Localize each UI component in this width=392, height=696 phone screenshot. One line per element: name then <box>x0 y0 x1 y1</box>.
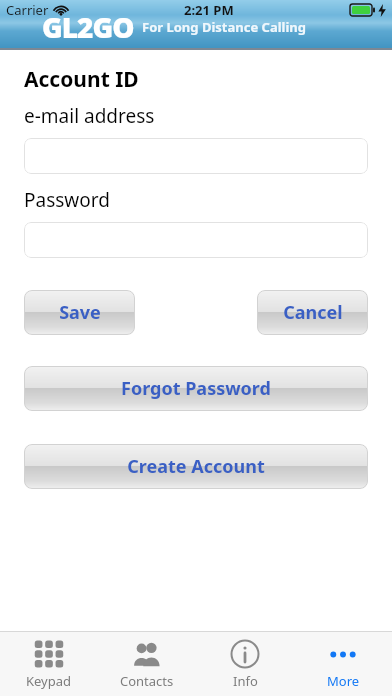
staticText: Carrier <box>6 1 49 19</box>
staticText: Contacts <box>120 672 174 690</box>
button[interactable]: Save <box>24 290 135 335</box>
staticText: e-mail address <box>24 103 155 129</box>
button[interactable]: Create Account <box>24 444 368 489</box>
button[interactable] <box>24 222 368 258</box>
staticText: GL2GO <box>42 8 134 46</box>
button[interactable]: Keypad <box>0 632 98 696</box>
staticText: Save <box>59 300 101 325</box>
button[interactable]: Contacts <box>98 632 196 696</box>
button[interactable]: Forgot Password <box>24 366 368 411</box>
button[interactable]: More <box>294 632 392 696</box>
staticText: Password <box>24 187 110 213</box>
staticText: Forgot Password <box>121 376 271 401</box>
button[interactable] <box>24 138 368 174</box>
staticText: Account ID <box>24 65 139 94</box>
button[interactable]: Info <box>196 632 294 696</box>
staticText: Create Account <box>127 454 265 479</box>
staticText: Cancel <box>283 300 343 325</box>
staticText: 2:21 PM <box>184 1 234 19</box>
staticText: Keypad <box>26 672 72 690</box>
staticText: Info <box>233 672 258 690</box>
staticText: For Long Distance Calling <box>142 18 306 36</box>
staticText: More <box>327 672 360 690</box>
button[interactable]: Cancel <box>257 290 368 335</box>
